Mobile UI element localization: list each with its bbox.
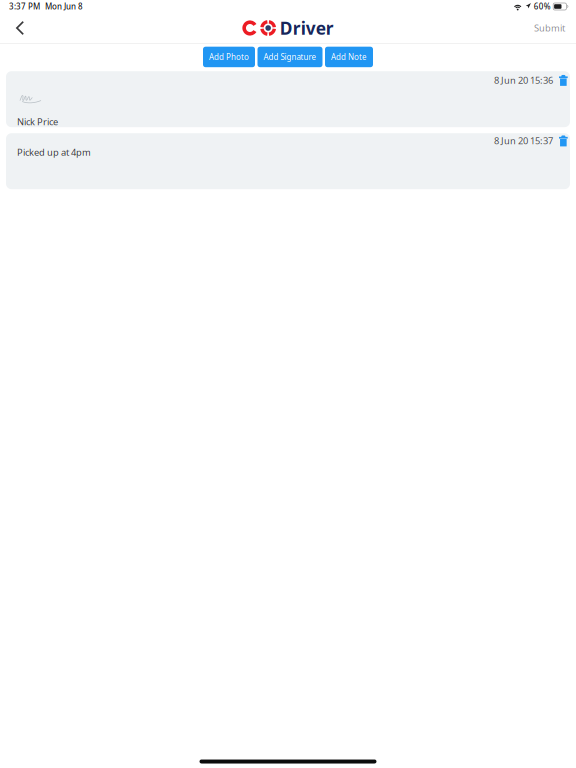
staticText: Driver xyxy=(280,16,334,39)
staticText: 8 Jun 20 15:36 xyxy=(494,74,553,86)
staticText: Add Note xyxy=(331,52,367,62)
staticText: 60% xyxy=(534,1,551,12)
button[interactable]: Back xyxy=(0,13,44,43)
button[interactable]: Delete xyxy=(553,73,570,87)
staticText: Mon Jun 8 xyxy=(45,1,83,12)
button[interactable]: Add Signature xyxy=(257,47,322,67)
button[interactable]: Submit xyxy=(516,13,576,43)
staticText: 8 Jun 20 15:37 xyxy=(494,134,553,147)
staticText: 3:37 PM xyxy=(9,1,40,12)
staticText: Submit xyxy=(534,22,565,34)
button[interactable]: Add Photo xyxy=(203,47,255,67)
button[interactable]: Delete xyxy=(553,134,570,148)
button[interactable]: Add Note xyxy=(325,47,373,67)
staticText: Add Photo xyxy=(209,52,249,62)
staticText: Add Signature xyxy=(263,52,316,62)
staticText: Picked up at 4pm xyxy=(17,146,91,158)
staticText: Nick Price xyxy=(17,115,58,128)
